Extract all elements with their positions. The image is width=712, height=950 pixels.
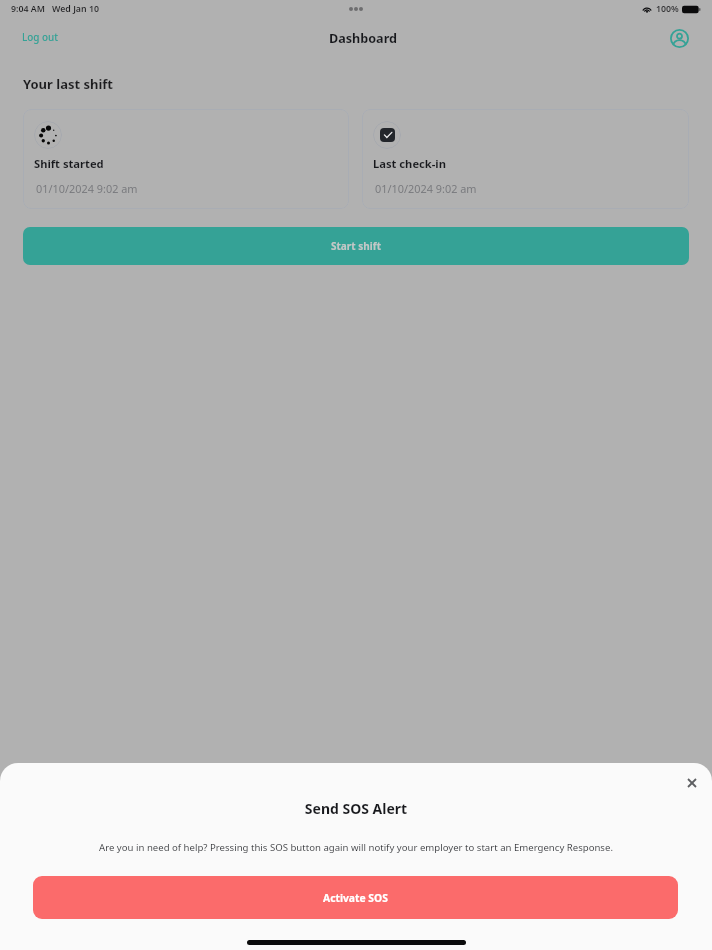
staticText: Your last shift: [23, 75, 113, 93]
staticText: Wed Jan 10: [52, 3, 99, 15]
button[interactable]: Last check-in: [362, 109, 689, 209]
button[interactable]: Shift started: [23, 109, 349, 209]
staticText: Send SOS Alert: [0, 799, 712, 818]
staticText: Log out: [22, 30, 59, 43]
button[interactable]: Start shift: [23, 227, 689, 265]
staticText: Last check-in: [373, 156, 446, 171]
staticText: Activate SOS: [323, 891, 388, 905]
staticText: 01/10/2024 9:02 am: [36, 181, 138, 196]
staticText: Are you in need of help? Pressing this S…: [60, 841, 652, 854]
staticText: 9:04 AM: [11, 3, 45, 15]
staticText: Shift started: [34, 156, 104, 171]
button[interactable]: Activate SOS: [33, 876, 678, 919]
staticText: Start shift: [331, 239, 381, 253]
button[interactable]: Close: [677, 768, 707, 798]
staticText: 01/10/2024 9:02 am: [375, 181, 477, 196]
button[interactable]: Log out: [14, 24, 67, 49]
button[interactable]: Account: [664, 23, 694, 53]
staticText: 100%: [656, 3, 679, 15]
staticText: Dashboard: [329, 30, 397, 47]
